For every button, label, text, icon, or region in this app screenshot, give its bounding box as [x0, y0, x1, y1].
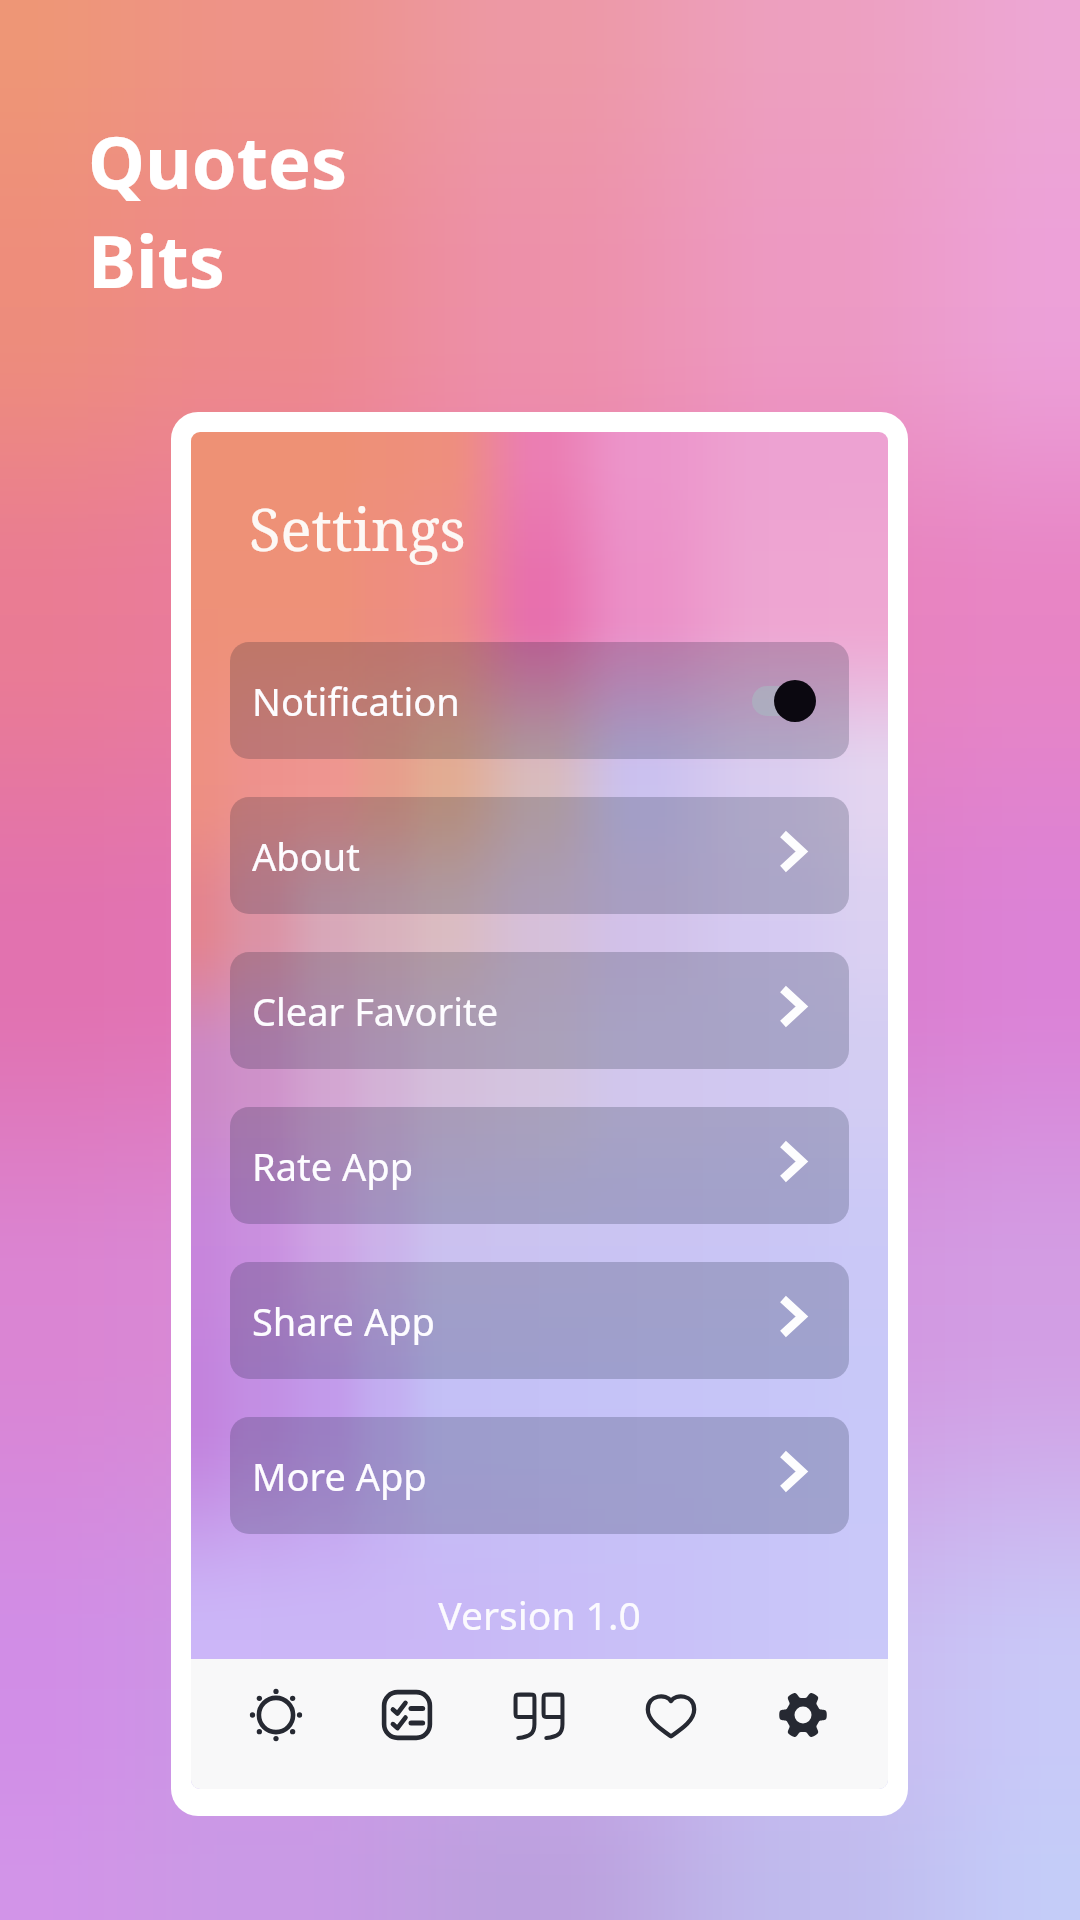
staticText: Rate App [252, 1140, 414, 1192]
button[interactable]: Brightness [210, 1659, 341, 1789]
staticText: Share App [252, 1295, 435, 1347]
staticText: Clear Favorite [252, 985, 499, 1037]
button[interactable]: Quotes [473, 1659, 605, 1789]
staticText: More App [252, 1450, 427, 1502]
button[interactable]: Favorites [605, 1659, 737, 1789]
button[interactable]: More App [230, 1417, 849, 1534]
button[interactable]: Quote list [341, 1659, 473, 1789]
button[interactable]: Share App [230, 1262, 849, 1379]
staticText: Bits [88, 211, 225, 309]
button[interactable]: Notification [230, 642, 849, 759]
button[interactable]: Rate App [230, 1107, 849, 1224]
button[interactable]: Clear Favorite [230, 952, 849, 1069]
staticText: Notification [252, 675, 460, 727]
staticText: About [252, 830, 360, 882]
staticText: Quotes [88, 112, 348, 210]
button[interactable]: Settings [737, 1659, 869, 1789]
button[interactable]: About [230, 797, 849, 914]
staticText: Version 1.0 [191, 1588, 888, 1641]
staticText: Settings [249, 489, 466, 568]
